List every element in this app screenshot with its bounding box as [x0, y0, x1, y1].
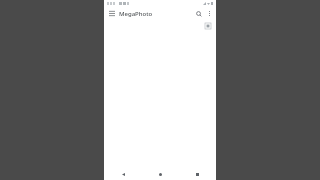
button[interactable]: Home: [142, 168, 179, 180]
button[interactable]: More options: [204, 8, 215, 19]
button[interactable]: Back: [104, 168, 142, 180]
staticText: MegaPhoto: [119, 10, 153, 18]
button[interactable]: Search: [193, 8, 204, 19]
button[interactable]: Open navigation drawer: [106, 8, 117, 19]
button[interactable]: Recent apps: [179, 168, 216, 180]
button[interactable]: Grid view: [204, 22, 212, 30]
